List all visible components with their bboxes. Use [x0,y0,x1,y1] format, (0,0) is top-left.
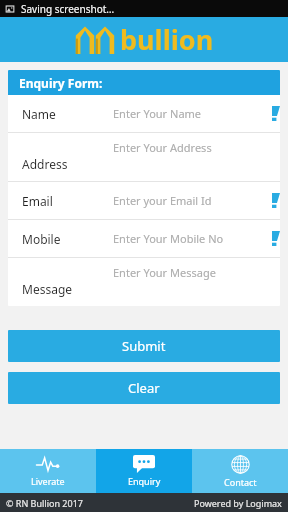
other: Enquiry [133,455,155,473]
staticText: © RN Bullion 2017 [6,497,83,509]
staticText: bullion [120,21,214,58]
button[interactable]: Clear [8,372,280,404]
other: Contact [231,455,250,474]
button[interactable]: Address [8,133,280,181]
staticText: Liverate [31,475,65,487]
staticText: Address [22,156,68,172]
button[interactable]: Submit [8,330,280,362]
button[interactable]: Name [8,95,280,132]
staticText: Enquiry [128,475,161,487]
button[interactable]: Email [8,182,280,219]
other: Liverate [36,455,60,473]
staticText: Enter Your Mobile No [113,231,224,246]
staticText: Powered by Logimax [194,497,282,509]
staticText: Message [22,281,73,297]
staticText: Enquiry Form: [19,75,103,91]
staticText: Clear [128,379,160,397]
button[interactable]: Enquiry [96,449,192,493]
button[interactable]: Message [8,258,280,306]
staticText: Saving screenshot… [21,2,115,16]
staticText: Submit [122,337,166,355]
staticText: Enter your Email Id [113,193,212,208]
button[interactable]: Mobile [8,220,280,257]
staticText: Enter Your Address [113,140,212,155]
staticText: Name [22,106,56,122]
button[interactable]: Liverate [0,449,96,493]
staticText: Mobile [22,231,61,247]
staticText: Email [22,193,53,209]
button[interactable]: Contact [192,449,288,493]
staticText: Enter Your Message [113,265,216,280]
staticText: Enter Your Name [113,106,202,121]
staticText: Contact [224,476,257,488]
